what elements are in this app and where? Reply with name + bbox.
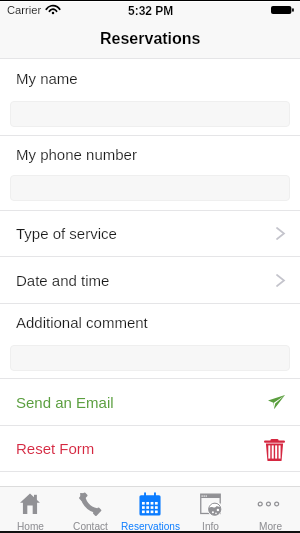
button[interactable]: Additional comment — [0, 304, 300, 378]
staticText: Send an Email — [16, 394, 114, 411]
staticText: Additional comment — [16, 314, 148, 331]
other: Send an Email — [268, 395, 285, 409]
button[interactable]: Type of service — [0, 211, 300, 256]
staticText: Reservations — [121, 521, 180, 532]
other: Reset Form — [264, 439, 285, 461]
staticText: Contact — [73, 521, 108, 532]
staticText: Reservations — [100, 30, 201, 48]
staticText: Info — [202, 521, 219, 532]
button[interactable]: Home — [0, 486, 60, 533]
staticText: Date and time — [16, 272, 110, 289]
staticText: Carrier — [7, 4, 42, 17]
button[interactable]: Contact — [60, 486, 120, 533]
button[interactable]: My phone number — [0, 136, 300, 210]
button[interactable]: Reservations — [120, 486, 180, 533]
button[interactable]: Info — [180, 486, 240, 533]
staticText: My phone number — [16, 146, 137, 163]
staticText: Reset Form — [16, 440, 95, 457]
staticText: More — [259, 521, 282, 532]
button[interactable]: Reset Form — [0, 426, 300, 471]
staticText: Home — [17, 521, 44, 532]
button[interactable]: More — [240, 486, 300, 533]
staticText: 5:32 PM — [128, 4, 174, 17]
button[interactable]: My name — [0, 59, 300, 135]
button[interactable]: Send an Email — [0, 379, 300, 425]
staticText: My name — [16, 70, 78, 87]
staticText: Type of service — [16, 225, 117, 242]
button[interactable]: Date and time — [0, 257, 300, 303]
